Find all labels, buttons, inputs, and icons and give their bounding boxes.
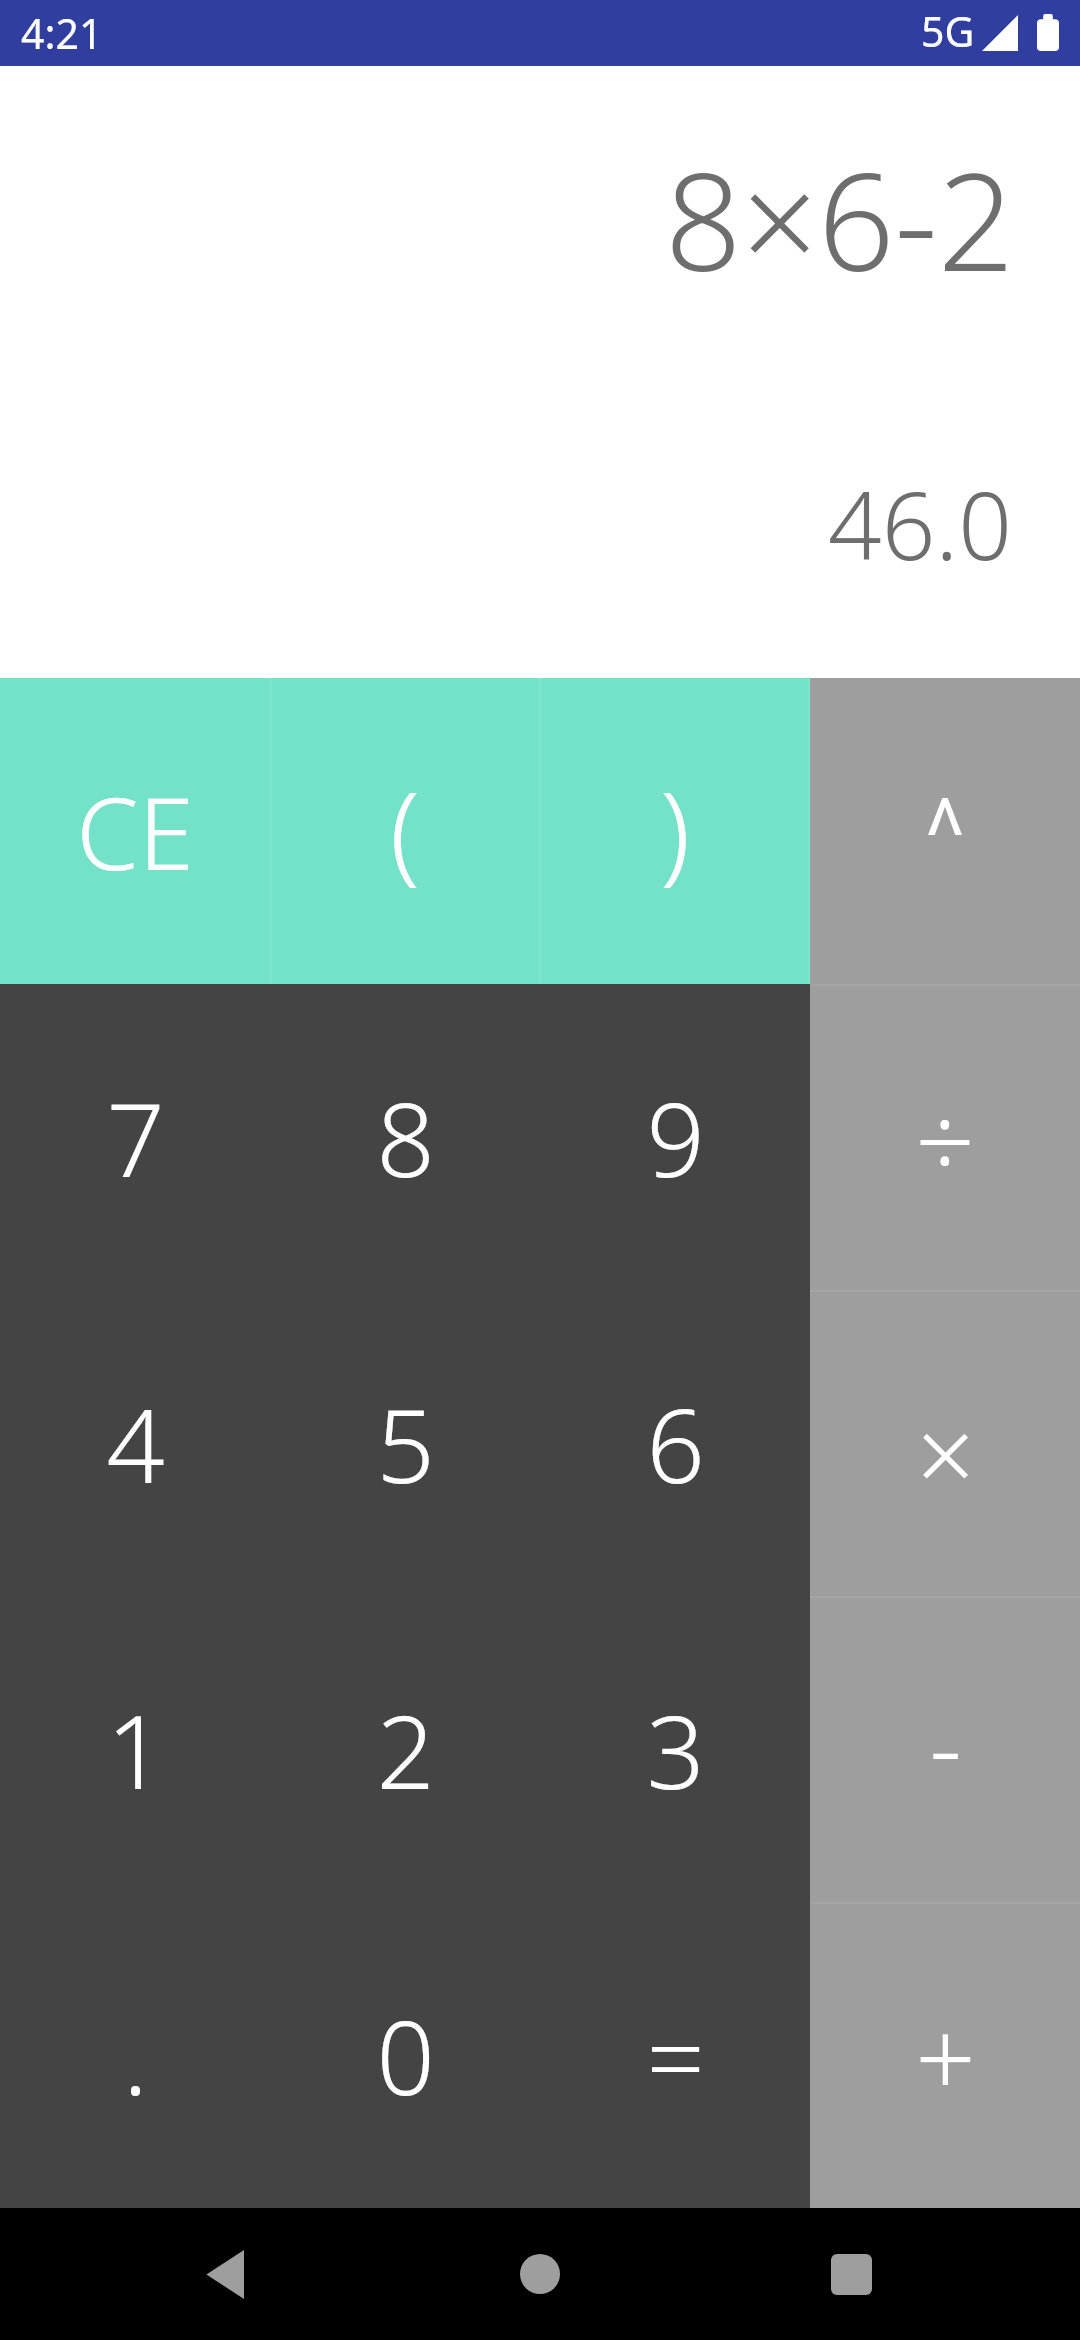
staticText: - — [929, 1676, 962, 1812]
staticText: 6 — [646, 1374, 705, 1513]
button[interactable]: Power — [810, 678, 1080, 984]
staticText: 2 — [376, 1680, 435, 1819]
button[interactable]: ( — [270, 678, 540, 984]
button[interactable]: Home — [445, 2208, 635, 2340]
button[interactable]: + — [810, 1902, 1080, 2208]
button[interactable]: 4 — [0, 1290, 270, 1596]
staticText: ( — [390, 756, 420, 903]
staticText: CE — [76, 763, 194, 899]
staticText: 5 — [376, 1374, 435, 1513]
staticText: 0 — [376, 1986, 435, 2125]
staticText: 8×6-2 — [665, 128, 1015, 311]
staticText: ÷ — [915, 1069, 975, 1211]
button[interactable]: . — [0, 1902, 270, 2208]
staticText: = — [646, 1986, 705, 2125]
button[interactable]: CE — [0, 678, 270, 984]
staticText: × — [916, 1383, 975, 1522]
button[interactable]: × — [810, 1290, 1080, 1596]
button[interactable]: 5 — [270, 1290, 540, 1596]
button[interactable]: 1 — [0, 1596, 270, 1902]
button[interactable]: 7 — [0, 984, 270, 1290]
staticText: 7 — [106, 1068, 165, 1207]
staticText: 3 — [646, 1680, 705, 1819]
staticText: ) — [660, 756, 690, 903]
button[interactable]: ) — [540, 678, 810, 984]
staticText: 9 — [646, 1068, 705, 1207]
button[interactable]: Recents — [756, 2208, 946, 2340]
button[interactable]: = — [540, 1902, 810, 2208]
staticText: 46.0 — [828, 460, 1012, 588]
button[interactable]: Back — [129, 2208, 319, 2340]
button[interactable]: - — [810, 1596, 1080, 1902]
button[interactable]: 9 — [540, 984, 810, 1290]
staticText: 4 — [106, 1374, 165, 1513]
staticText: 1 — [106, 1680, 165, 1819]
button[interactable]: 3 — [540, 1596, 810, 1902]
staticText: 4:21 — [21, 5, 103, 61]
staticText: + — [915, 1985, 976, 2129]
staticText: 8 — [376, 1068, 435, 1207]
button[interactable]: 6 — [540, 1290, 810, 1596]
button[interactable]: 2 — [270, 1596, 540, 1902]
staticText: . — [123, 1986, 148, 2125]
button[interactable]: 0 — [270, 1902, 540, 2208]
button[interactable]: ÷ — [810, 984, 1080, 1290]
staticText: 5G — [921, 3, 975, 59]
button[interactable]: 8 — [270, 984, 540, 1290]
